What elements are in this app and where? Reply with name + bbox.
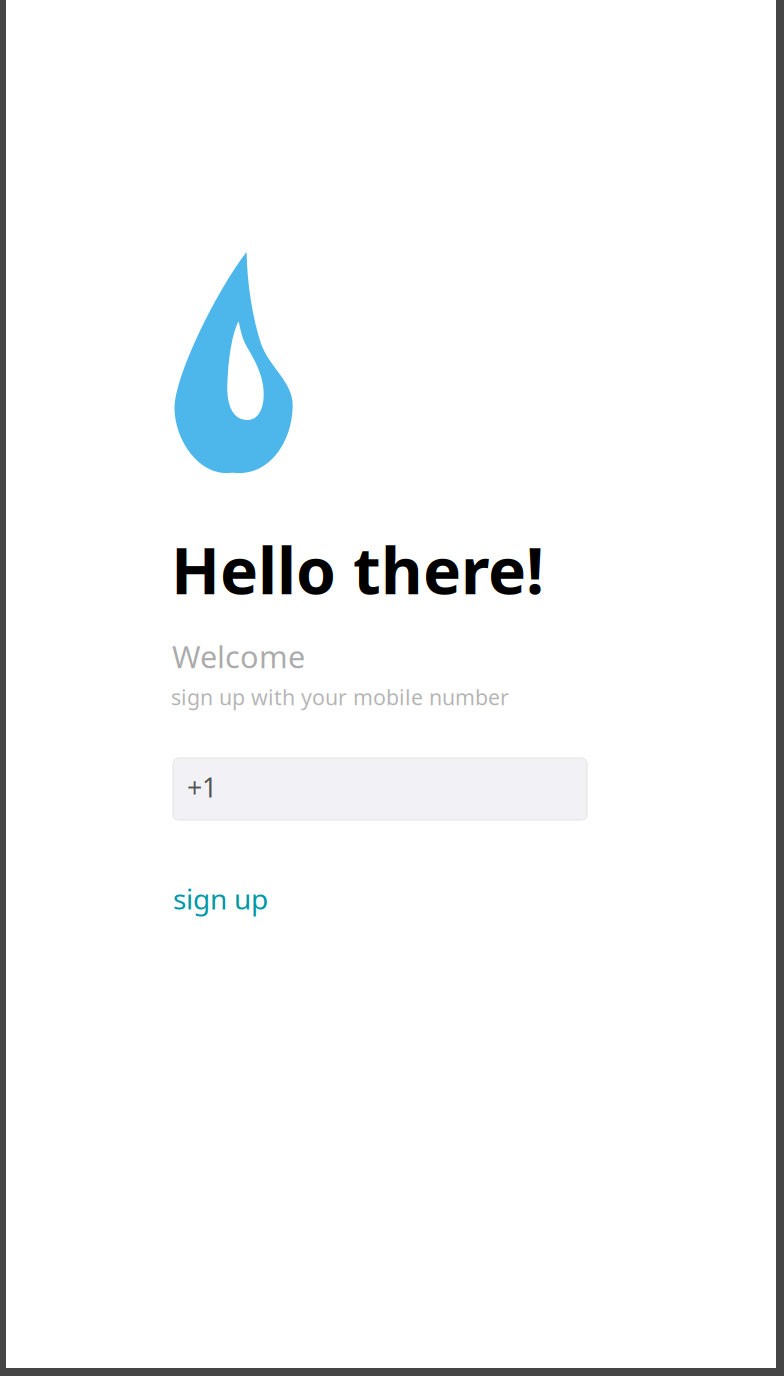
button[interactable]: sign up <box>173 880 268 917</box>
staticText: sign up <box>173 880 268 917</box>
button[interactable]: Mobile number <box>173 758 587 820</box>
staticText: +1 <box>187 769 217 805</box>
staticText: Hello there! <box>171 527 544 612</box>
staticText: sign up with your mobile number <box>171 683 509 711</box>
staticText: Welcome <box>172 636 305 677</box>
